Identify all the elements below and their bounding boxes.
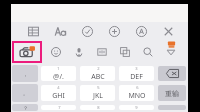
button[interactable]: Check [79, 23, 95, 39]
button[interactable]: Add [106, 23, 122, 39]
button[interactable]: 1 [41, 66, 76, 81]
staticText: @/. [53, 72, 64, 81]
staticText: 重输 [165, 89, 179, 98]
button[interactable]: 2 [80, 66, 115, 81]
staticText: GHI [52, 91, 65, 101]
button[interactable]: 8 [80, 105, 115, 110]
staticText: ， [23, 71, 28, 77]
staticText: JKL [93, 91, 103, 101]
button[interactable]: Close [160, 23, 176, 39]
button[interactable]: Collapse keyboard [162, 43, 180, 61]
button[interactable]: Voice input [70, 43, 88, 61]
staticText: DEF [130, 72, 143, 81]
staticText: 1 [57, 66, 60, 71]
button[interactable]: 9 [119, 105, 154, 110]
button[interactable]: 5 [80, 85, 115, 101]
button[interactable] [158, 105, 186, 110]
button[interactable]: Emoji [47, 43, 65, 61]
button[interactable]: 4 [41, 85, 76, 101]
button[interactable]: 7 [41, 105, 76, 110]
staticText: ？ [23, 105, 28, 111]
staticText: 。 [23, 90, 28, 96]
staticText: 2 [97, 66, 100, 71]
staticText: 3 [135, 66, 138, 71]
staticText: 7 [58, 105, 61, 110]
button[interactable]: Font size [52, 23, 68, 39]
button[interactable]: 6 [119, 85, 154, 101]
button[interactable]: ？ [12, 104, 38, 111]
button[interactable]: Search [139, 43, 157, 61]
staticText: 8 [97, 105, 100, 110]
button[interactable]: 重输 [158, 85, 186, 101]
staticText: 5 [97, 85, 100, 90]
button[interactable]: Backspace [158, 66, 186, 81]
button[interactable]: Account [133, 23, 149, 39]
staticText: 6 [136, 85, 139, 90]
staticText: ABC [91, 72, 105, 81]
button[interactable]: Translate [116, 43, 134, 61]
staticText: 4 [57, 85, 60, 90]
button[interactable]: 3 [119, 66, 154, 81]
button[interactable]: Grid [25, 23, 41, 39]
button[interactable]: Handwriting [93, 43, 111, 61]
staticText: 9 [135, 105, 138, 110]
staticText: MNO [128, 91, 146, 101]
button[interactable]: Stickers [12, 41, 42, 63]
